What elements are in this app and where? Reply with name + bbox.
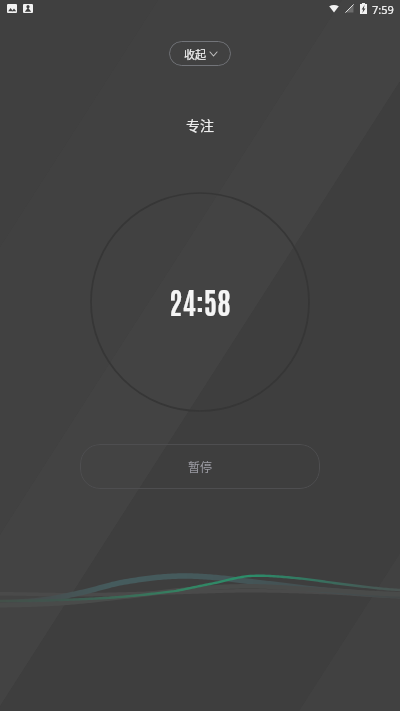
staticText: 7:59	[372, 2, 394, 17]
staticText: 24:58	[169, 283, 231, 321]
staticText: 专注	[186, 115, 214, 135]
button[interactable]: 收起	[169, 41, 231, 66]
button[interactable]: 暂停	[80, 444, 320, 489]
staticText: 暂停	[188, 458, 213, 475]
staticText: 收起	[184, 46, 206, 62]
